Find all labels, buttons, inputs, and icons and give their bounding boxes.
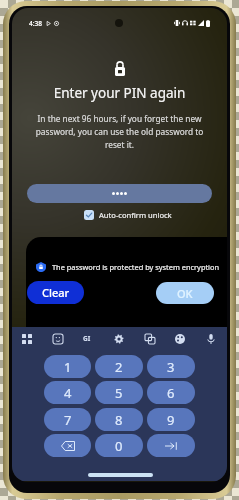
- staticText: 6: [167, 384, 175, 402]
- staticText: 1: [64, 358, 72, 376]
- button[interactable]: Emoji: [50, 331, 65, 346]
- button[interactable]: 0: [95, 434, 143, 457]
- staticText: 2: [115, 358, 123, 376]
- button[interactable]: 1: [44, 355, 91, 378]
- staticText: 0: [115, 437, 123, 455]
- staticText: 7: [64, 411, 72, 429]
- button[interactable]: Themes: [172, 331, 187, 346]
- button[interactable]: Clear: [27, 281, 84, 304]
- button[interactable]: OK: [156, 282, 214, 304]
- other: Enter: [165, 441, 177, 451]
- staticText: 9: [167, 411, 175, 429]
- button[interactable]: [27, 184, 212, 203]
- staticText: 4: [64, 384, 72, 402]
- button[interactable]: Delete: [44, 434, 91, 457]
- button[interactable]: 6: [147, 381, 195, 404]
- button[interactable]: 8: [95, 408, 143, 431]
- staticText: 8: [115, 411, 123, 429]
- staticText: Clear: [42, 285, 70, 300]
- button[interactable]: 2: [95, 355, 143, 378]
- button[interactable]: Voice input: [203, 331, 218, 346]
- staticText: 5: [115, 384, 123, 402]
- staticText: Auto-confirm unlock: [99, 210, 172, 220]
- button[interactable]: Auto-confirm unlock: [84, 209, 172, 220]
- button[interactable]: 5: [95, 381, 143, 404]
- staticText: The password is protected by system encr…: [52, 262, 220, 272]
- button[interactable]: Translate: [142, 331, 157, 346]
- button[interactable]: Enter: [147, 434, 195, 457]
- button[interactable]: Keyboard switcher: [19, 331, 34, 346]
- staticText: GIF: [83, 334, 93, 344]
- staticText: 4:38: [29, 19, 43, 28]
- button[interactable]: 4: [44, 381, 91, 404]
- staticText: Enter your PIN again: [12, 84, 227, 102]
- staticText: OK: [177, 286, 193, 301]
- other: Delete: [61, 441, 75, 451]
- button[interactable]: 3: [147, 355, 195, 378]
- staticText: In the next 96 hours, if you forget the …: [34, 113, 205, 151]
- button[interactable]: 7: [44, 408, 91, 431]
- staticText: 3: [167, 358, 175, 376]
- button[interactable]: Settings: [111, 331, 126, 346]
- button[interactable]: 9: [147, 408, 195, 431]
- button[interactable]: GIF: [80, 331, 95, 346]
